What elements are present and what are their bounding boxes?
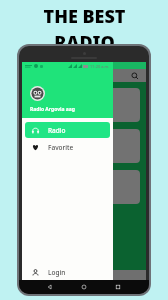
button[interactable]: Home [81,284,87,290]
button[interactable] [28,88,140,122]
button[interactable]: Favorite [22,138,113,156]
staticText: 11:20 a.m. [90,64,110,69]
button[interactable]: Recents [115,284,121,290]
button[interactable]: Profile image [30,86,45,101]
staticText: Radio [48,126,66,135]
staticText: Login [48,268,66,277]
staticText: THE BEST [43,4,126,29]
staticText: Radio Argovia aag [30,106,75,113]
button[interactable] [28,129,140,163]
button[interactable]: Search [131,72,139,80]
button[interactable]: Back [47,284,53,290]
button[interactable] [28,170,140,204]
button[interactable]: Radio [25,122,110,138]
staticText: Favorite [48,143,74,152]
button[interactable]: Login [22,263,113,281]
staticText: RADIO [54,30,115,55]
